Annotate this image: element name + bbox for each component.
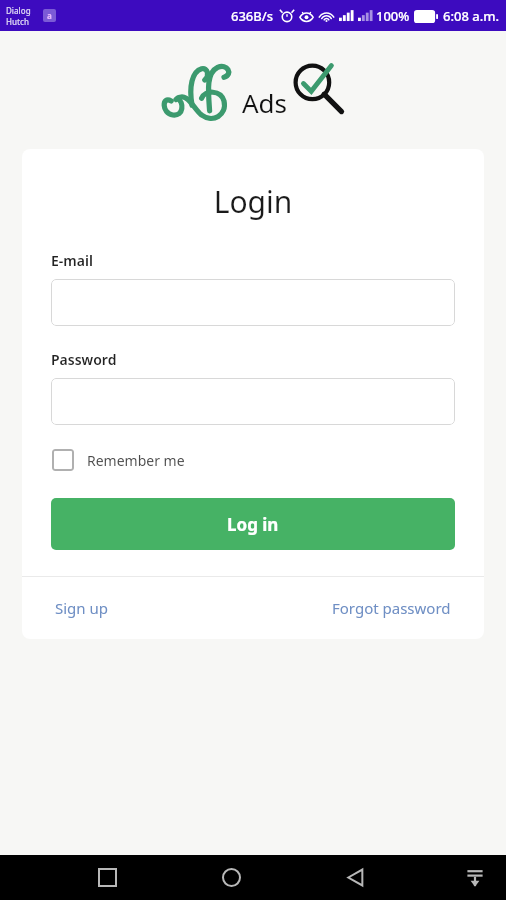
button[interactable]: Remember me <box>51 447 186 473</box>
staticText: Sign up <box>55 598 108 618</box>
staticText: Log in <box>227 513 279 536</box>
button[interactable]: Sign up <box>51 592 112 624</box>
staticText: Dialog <box>6 5 31 16</box>
button[interactable] <box>51 279 455 326</box>
staticText: 100% <box>376 7 410 25</box>
staticText: E-mail <box>51 251 93 270</box>
button[interactable] <box>51 378 455 425</box>
button[interactable]: Back <box>332 855 378 900</box>
staticText: a <box>47 10 52 21</box>
button[interactable]: Log in <box>51 498 455 550</box>
button[interactable]: Forgot password <box>328 592 455 624</box>
button[interactable]: Recents <box>84 855 130 900</box>
staticText: Remember me <box>87 451 185 470</box>
staticText: Ads <box>242 85 288 120</box>
staticText: 636B/s <box>231 7 274 25</box>
staticText: Forgot password <box>332 598 451 618</box>
staticText: Password <box>51 350 117 369</box>
button[interactable]: Home <box>208 855 254 900</box>
staticText: 6:08 a.m. <box>443 7 500 25</box>
button[interactable]: Hide keyboard <box>452 855 498 900</box>
staticText: Login <box>51 181 455 222</box>
staticText: Hutch <box>6 16 30 27</box>
